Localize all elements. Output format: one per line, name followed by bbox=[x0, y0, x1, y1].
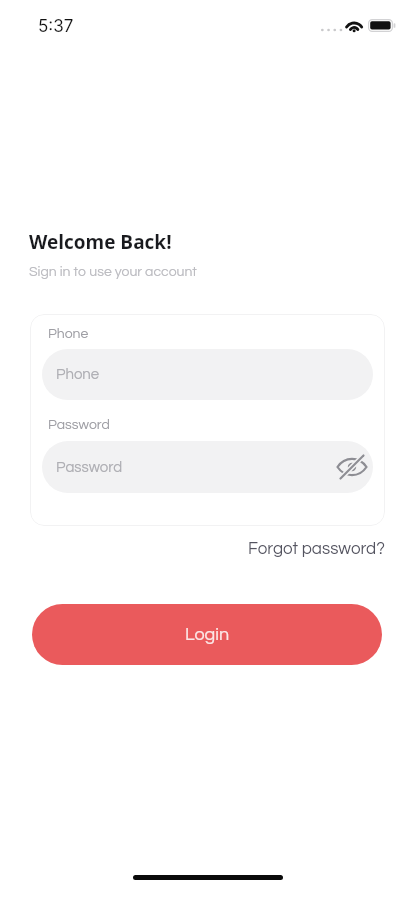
button[interactable]: Phone bbox=[42, 349, 373, 400]
staticText: Sign in to use your account bbox=[29, 265, 197, 279]
staticText: Login bbox=[185, 625, 230, 644]
staticText: Phone bbox=[56, 367, 100, 382]
staticText: Password bbox=[56, 460, 123, 475]
staticText: Welcome Back! bbox=[29, 229, 172, 255]
staticText: Forgot password? bbox=[248, 540, 385, 558]
button[interactable]: Password bbox=[42, 441, 373, 493]
staticText: 5:37 bbox=[38, 16, 74, 37]
button[interactable]: Toggle password visibility bbox=[333, 448, 371, 486]
staticText: Password bbox=[48, 418, 110, 432]
button[interactable]: Forgot password? bbox=[246, 538, 387, 560]
staticText: Phone bbox=[48, 327, 89, 341]
button[interactable]: Login bbox=[32, 604, 382, 665]
